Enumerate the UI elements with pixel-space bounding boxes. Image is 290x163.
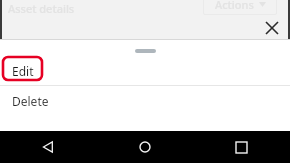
button[interactable]: Home xyxy=(96,131,193,163)
button[interactable]: Close xyxy=(262,18,282,38)
staticText: Actions xyxy=(215,0,254,12)
button[interactable]: Actions xyxy=(203,0,277,15)
staticText: Asset details xyxy=(8,1,75,16)
button[interactable]: Edit xyxy=(0,56,290,85)
button[interactable]: Recent apps xyxy=(193,131,290,163)
button[interactable]: Back xyxy=(0,131,96,163)
staticText: Delete xyxy=(12,93,49,109)
staticText: Edit xyxy=(12,63,34,79)
button[interactable]: Delete xyxy=(0,86,290,116)
